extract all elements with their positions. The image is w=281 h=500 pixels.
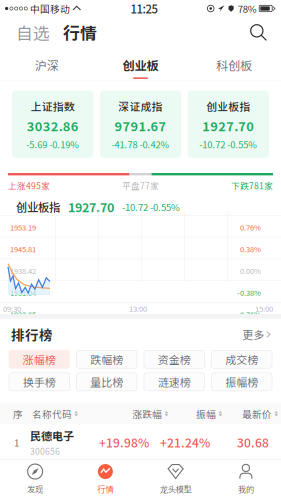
- staticText: -0.76%: [237, 309, 261, 319]
- staticText: 振幅: [196, 407, 216, 421]
- staticText: 我的: [238, 483, 254, 495]
- staticText: 3032.86: [27, 116, 79, 135]
- button[interactable]: 我的: [211, 464, 281, 495]
- button[interactable]: 沪深: [0, 47, 94, 81]
- button[interactable]: 发现: [0, 464, 70, 495]
- button[interactable]: 龙头模型: [140, 464, 211, 495]
- staticText: 09:30: [3, 303, 21, 314]
- staticText: 龙头模型: [160, 483, 192, 495]
- button[interactable]: 涟速榜: [144, 373, 204, 391]
- button[interactable]: 上证指数: [12, 90, 93, 158]
- staticText: 1: [14, 435, 19, 449]
- staticText: 资金榜: [158, 351, 191, 367]
- staticText: 深证成指: [118, 98, 162, 114]
- button[interactable]: 行情: [63, 20, 97, 44]
- staticText: 涨幅榜: [23, 351, 56, 367]
- staticText: 1938.42: [10, 265, 36, 276]
- staticText: 上涨495家: [8, 179, 50, 192]
- button[interactable]: 创业板指: [188, 90, 269, 158]
- staticText: 行情: [63, 20, 97, 44]
- staticText: 1927.70: [202, 116, 254, 135]
- button[interactable]: 资金榜: [144, 350, 204, 368]
- staticText: 振幅榜: [225, 374, 258, 390]
- staticText: -41.78 -0.42%: [111, 137, 169, 151]
- staticText: 名称代码: [32, 407, 72, 421]
- staticText: 科创板: [216, 56, 252, 74]
- button[interactable]: 量比榜: [76, 373, 137, 391]
- staticText: 13:00: [129, 303, 147, 314]
- staticText: 自选: [16, 20, 50, 44]
- staticText: 11:25: [130, 0, 157, 17]
- staticText: 创业板指: [16, 199, 60, 215]
- staticText: 更多: [242, 326, 264, 342]
- staticText: 行情: [97, 483, 113, 495]
- staticText: 1953.19: [10, 222, 36, 232]
- button[interactable]: 换手榜: [9, 373, 69, 391]
- staticText: 9791.67: [114, 116, 166, 135]
- staticText: 发现: [27, 483, 43, 495]
- button[interactable]: 自选: [16, 20, 50, 44]
- staticText: 0.38%: [240, 243, 261, 254]
- staticText: 300656: [30, 445, 60, 457]
- staticText: 上证指数: [31, 98, 75, 114]
- staticText: 最新价: [242, 407, 272, 421]
- staticText: 沪深: [35, 56, 59, 74]
- button[interactable]: 深证成指: [100, 90, 181, 158]
- staticText: 下跌781家: [231, 179, 273, 192]
- staticText: -10.72 -0.55%: [122, 200, 180, 214]
- staticText: 30.68: [237, 434, 269, 451]
- staticText: 换手榜: [23, 374, 56, 390]
- staticText: 创业板指: [206, 98, 250, 114]
- staticText: 量比榜: [90, 374, 123, 390]
- button[interactable]: 搜索: [250, 24, 267, 41]
- staticText: +21.24%: [160, 434, 210, 451]
- button[interactable]: 涨幅榜: [9, 350, 69, 368]
- staticText: -0.38%: [237, 287, 261, 298]
- staticText: 民德电子: [30, 427, 74, 443]
- staticText: 平盘77家: [122, 179, 159, 192]
- button[interactable]: 振幅榜: [211, 373, 272, 391]
- button[interactable]: 科创板: [187, 47, 281, 81]
- staticText: 创业板: [122, 56, 158, 74]
- staticText: 成交榜: [225, 351, 258, 367]
- staticText: 序: [13, 407, 23, 421]
- button[interactable]: 跌幅榜: [76, 350, 137, 368]
- staticText: 涟速榜: [158, 374, 191, 390]
- staticText: 78%: [238, 1, 257, 15]
- staticText: 0.76%: [240, 222, 261, 232]
- staticText: 涨跌幅: [132, 407, 162, 421]
- staticText: 1927.70: [68, 198, 114, 216]
- staticText: 1945.81: [10, 243, 36, 254]
- staticText: 排行榜: [11, 325, 53, 344]
- staticText: 15:00: [255, 303, 273, 314]
- button[interactable]: 更多: [242, 326, 270, 342]
- button[interactable]: 成交榜: [211, 350, 272, 368]
- button[interactable]: 1: [0, 425, 281, 460]
- staticText: 0.00%: [240, 265, 261, 276]
- staticText: -5.69 -0.19%: [26, 137, 79, 151]
- staticText: -10.72 -0.55%: [199, 137, 257, 151]
- staticText: 跌幅榜: [90, 351, 123, 367]
- button[interactable]: 行情: [70, 464, 140, 495]
- staticText: +19.98%: [99, 434, 149, 451]
- button[interactable]: 创业板: [94, 47, 187, 81]
- staticText: 1923.65: [10, 309, 36, 319]
- staticText: 1931.04: [10, 287, 36, 298]
- staticText: 中国移动: [30, 1, 70, 15]
